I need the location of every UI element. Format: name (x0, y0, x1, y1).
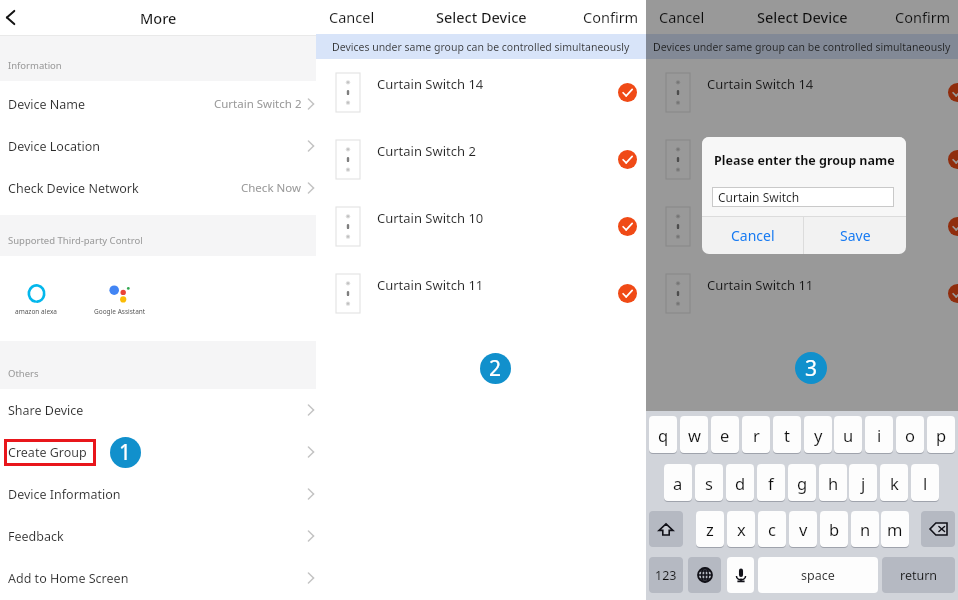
button[interactable]: l (911, 464, 939, 502)
button[interactable]: t (773, 416, 801, 454)
button[interactable]: Device Location (0, 125, 316, 167)
staticText: Device Location (8, 138, 100, 155)
staticText: Save (840, 226, 871, 245)
staticText: d (735, 472, 746, 494)
staticText: x (737, 518, 746, 540)
button[interactable]: Dictate (727, 557, 754, 593)
staticText: b (829, 518, 840, 540)
staticText: Curtain Switch 2 (214, 96, 302, 112)
button[interactable]: r (742, 416, 770, 454)
staticText: Device Name (8, 96, 86, 113)
button[interactable]: Curtain Switch 10 (646, 197, 958, 257)
staticText: h (828, 472, 839, 494)
staticText: e (720, 424, 730, 446)
staticText: 3 (805, 354, 818, 383)
button[interactable]: Feedback (0, 515, 316, 557)
button[interactable]: Cancel (316, 7, 375, 27)
button[interactable]: Curtain Switch 2 (646, 130, 958, 190)
button[interactable]: Confirm (583, 7, 646, 27)
button[interactable]: Curtain Switch 11 (316, 264, 646, 324)
staticText: return (900, 567, 938, 584)
staticText: Add to Home Screen (8, 570, 129, 587)
button[interactable]: p (927, 416, 955, 454)
button[interactable]: Curtain Switch 2 (316, 130, 646, 190)
button[interactable]: Curtain Switch 14 (316, 63, 646, 123)
button[interactable]: b (820, 511, 848, 548)
button[interactable]: space (758, 557, 878, 593)
button[interactable]: o (896, 416, 924, 454)
button[interactable]: i (865, 416, 893, 454)
button[interactable]: a (664, 464, 692, 502)
staticText: Supported Third-party Control (8, 234, 143, 247)
button[interactable]: Curtain Switch 10 (316, 197, 646, 257)
button[interactable]: v (789, 511, 817, 548)
button[interactable]: c (758, 511, 786, 548)
button[interactable]: return (882, 557, 955, 593)
button[interactable]: n (851, 511, 879, 548)
button[interactable]: Share Device (0, 389, 316, 431)
button[interactable]: x (727, 511, 755, 548)
button[interactable]: Save (804, 217, 906, 254)
staticText: Devices under same group can be controll… (332, 40, 630, 54)
staticText: Select Device (757, 7, 848, 27)
button[interactable]: k (880, 464, 908, 502)
button[interactable]: Device Name (0, 83, 316, 125)
button[interactable]: y (804, 416, 832, 454)
staticText: Share Device (8, 402, 84, 419)
staticText: Check Now (241, 180, 302, 196)
button[interactable]: Add to Home Screen (0, 557, 316, 599)
staticText: Curtain Switch 14 (707, 75, 814, 93)
button[interactable]: q (649, 416, 677, 454)
button[interactable]: f (757, 464, 785, 502)
button[interactable]: Backspace (921, 511, 955, 547)
button[interactable]: h (819, 464, 847, 502)
staticText: Device Information (8, 486, 121, 503)
staticText: w (688, 424, 701, 446)
button[interactable]: u (834, 416, 862, 454)
staticText: Curtain Switch 14 (377, 75, 484, 93)
button[interactable]: s (695, 464, 723, 502)
button[interactable]: g (788, 464, 816, 502)
staticText: v (799, 518, 808, 540)
button[interactable]: Back (0, 2, 21, 33)
staticText: Cancel (731, 226, 775, 245)
staticText: Information (8, 59, 62, 72)
staticText: Feedback (8, 528, 64, 545)
staticText: m (887, 518, 903, 540)
staticText: 2 (489, 354, 502, 383)
staticText: p (936, 424, 947, 446)
button[interactable]: Shift (649, 511, 683, 547)
staticText: Check Device Network (8, 180, 139, 197)
button[interactable]: Curtain Switch 14 (646, 63, 958, 123)
button[interactable]: z (696, 511, 724, 548)
staticText: 1 (119, 438, 132, 467)
button[interactable]: w (680, 416, 708, 454)
button[interactable]: d (726, 464, 754, 502)
button[interactable]: m (881, 511, 909, 548)
staticText: r (753, 424, 760, 446)
button[interactable]: Change keyboard language (688, 557, 721, 593)
staticText: y (814, 424, 823, 446)
staticText: i (877, 424, 882, 446)
button[interactable]: Create Group (0, 431, 316, 473)
button[interactable]: Check Device Network (0, 167, 316, 209)
button[interactable]: j (849, 464, 877, 502)
staticText: Please enter the group name (714, 152, 895, 169)
staticText: q (658, 424, 669, 446)
button[interactable]: Cancel (702, 217, 803, 254)
staticText: More (140, 8, 177, 28)
staticText: Select Device (436, 7, 527, 27)
button[interactable]: 123 (649, 557, 683, 593)
staticText: Devices under same group can be controll… (653, 40, 951, 54)
button[interactable]: Curtain Switch 11 (646, 264, 958, 324)
button[interactable]: Cancel (646, 7, 705, 27)
staticText: c (768, 518, 776, 540)
button[interactable]: Confirm (895, 7, 958, 27)
staticText: a (673, 472, 683, 494)
staticText: Google Assistant (94, 307, 146, 316)
button[interactable]: Device Information (0, 473, 316, 515)
staticText: f (768, 472, 774, 494)
button[interactable]: e (711, 416, 739, 454)
staticText: Create Group (8, 444, 87, 461)
staticText: Curtain Switch 2 (707, 142, 806, 160)
